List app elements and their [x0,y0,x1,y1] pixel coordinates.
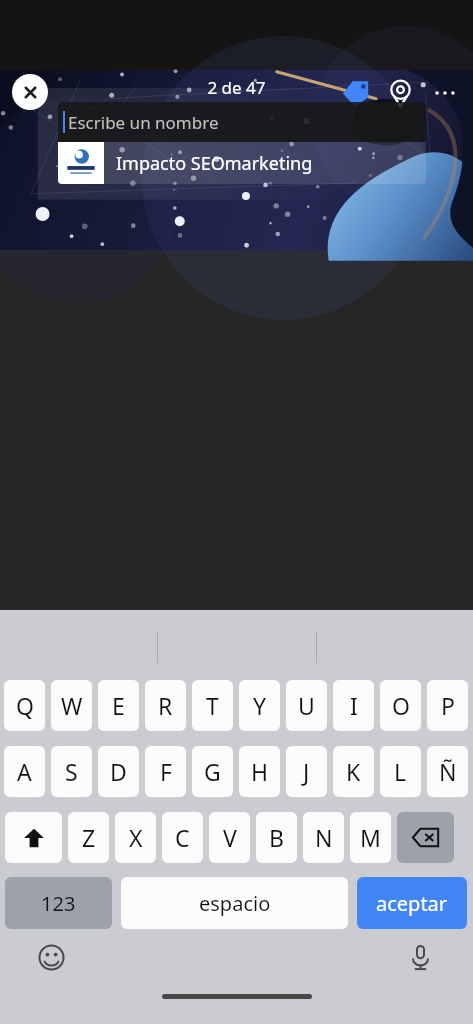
button[interactable]: K [333,746,374,797]
staticText: Ñ [439,756,457,787]
staticText: S [65,756,78,787]
button[interactable]: Impacto SEOmarketing [58,142,426,184]
button[interactable]: A [4,746,45,797]
staticText: X [129,822,143,853]
staticText: C [175,822,190,853]
button[interactable]: S [51,746,92,797]
button[interactable]: W [51,680,92,731]
staticText: espacio [199,890,271,917]
staticText: D [110,756,127,787]
staticText: Y [253,690,267,721]
button[interactable]: Borrar [397,812,454,863]
button[interactable]: C [162,812,203,863]
button[interactable]: I [333,680,374,731]
button[interactable]: P [427,680,468,731]
button[interactable]: N [303,812,344,863]
button[interactable]: T [192,680,233,731]
staticText: B [269,822,284,853]
button[interactable]: espacio [121,877,348,929]
button[interactable]: J [286,746,327,797]
button[interactable]: F [145,746,186,797]
staticText: K [346,756,361,787]
staticText: G [204,756,221,787]
button[interactable]: Q [4,680,45,731]
staticText: J [303,756,310,787]
button[interactable]: M [350,812,391,863]
staticText: A [17,756,32,787]
button[interactable]: X [115,812,156,863]
button[interactable]: Etiquetar [336,74,374,112]
staticText: aceptar [376,890,448,917]
button[interactable]: Ubicación [381,74,419,112]
button[interactable]: aceptar [357,877,467,929]
staticText: R [158,690,173,721]
button[interactable]: O [380,680,421,731]
staticText: N [315,822,333,853]
staticText: Q [16,690,34,721]
button[interactable]: Z [68,812,109,863]
staticText: F [160,756,172,787]
staticText: P [441,690,455,721]
staticText: 2 de 47 [0,76,473,99]
staticText: H [251,756,269,787]
button[interactable]: L [380,746,421,797]
staticText: Z [82,822,96,853]
button[interactable]: G [192,746,233,797]
staticText: Impacto SEOmarketing [116,151,313,176]
staticText: E [112,690,125,721]
button[interactable]: Cerrar [12,74,48,110]
button[interactable]: V [209,812,250,863]
staticText: W [61,690,83,721]
button[interactable]: 123 [5,877,112,929]
staticText: L [394,756,407,787]
staticText: Escribe un nombre [68,111,219,134]
button[interactable]: U [286,680,327,731]
staticText: V [223,822,237,853]
button[interactable]: D [98,746,139,797]
button[interactable]: Más opciones [426,74,464,112]
staticText: I [350,690,358,721]
staticText: U [298,690,315,721]
button[interactable]: Mayúsculas [5,812,62,863]
staticText: O [392,690,410,721]
button[interactable]: Emoji [30,936,72,978]
button[interactable]: Y [239,680,280,731]
button[interactable]: R [145,680,186,731]
staticText: M [360,822,381,853]
button[interactable]: B [256,812,297,863]
staticText: T [206,690,219,721]
button[interactable]: Ñ [427,746,468,797]
staticText: 123 [41,890,76,917]
button[interactable]: Dictado por voz [399,936,441,978]
button[interactable]: H [239,746,280,797]
button[interactable]: E [98,680,139,731]
